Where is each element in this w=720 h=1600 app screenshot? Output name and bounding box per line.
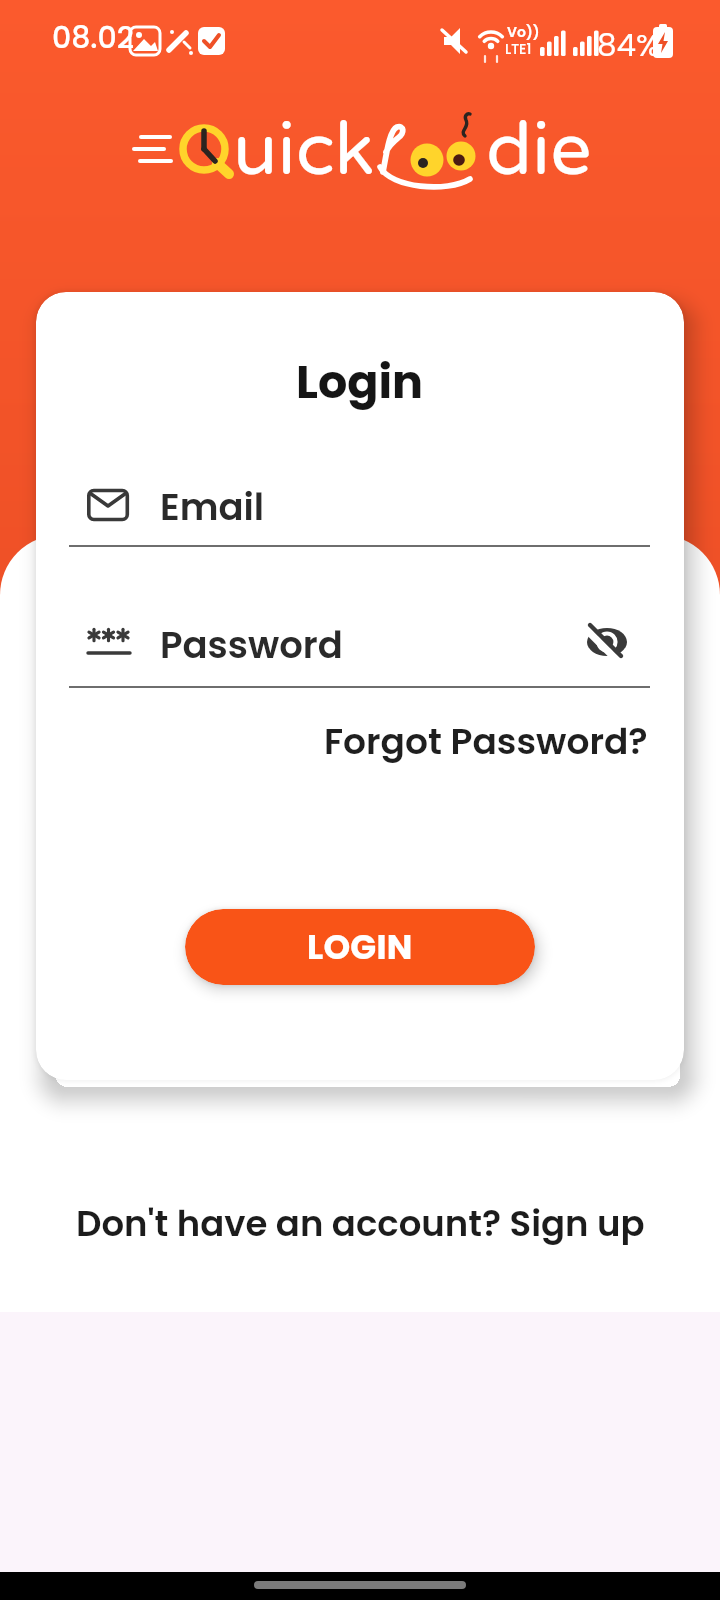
button[interactable]: Email bbox=[160, 479, 620, 549]
staticText: LTE1 bbox=[505, 39, 532, 59]
staticText: Password bbox=[160, 619, 343, 671]
staticText: Email bbox=[160, 481, 265, 533]
staticText: 08.02 bbox=[52, 17, 135, 59]
button[interactable]: Don't have an account? Sign up bbox=[0, 1192, 720, 1256]
staticText: Forgot Password? bbox=[324, 716, 648, 766]
staticText: Don't have an account? Sign up bbox=[76, 1199, 645, 1249]
staticText: die bbox=[486, 107, 592, 195]
button[interactable]: LOGIN bbox=[185, 909, 535, 985]
staticText: 84% bbox=[597, 23, 660, 66]
staticText: LOGIN bbox=[307, 923, 413, 971]
button[interactable] bbox=[576, 616, 636, 676]
staticText: Login bbox=[296, 350, 424, 414]
button[interactable]: Forgot Password? bbox=[324, 716, 648, 766]
staticText: uick bbox=[233, 107, 375, 195]
staticText: Vo)) bbox=[507, 22, 540, 42]
button[interactable]: Password bbox=[160, 617, 560, 687]
